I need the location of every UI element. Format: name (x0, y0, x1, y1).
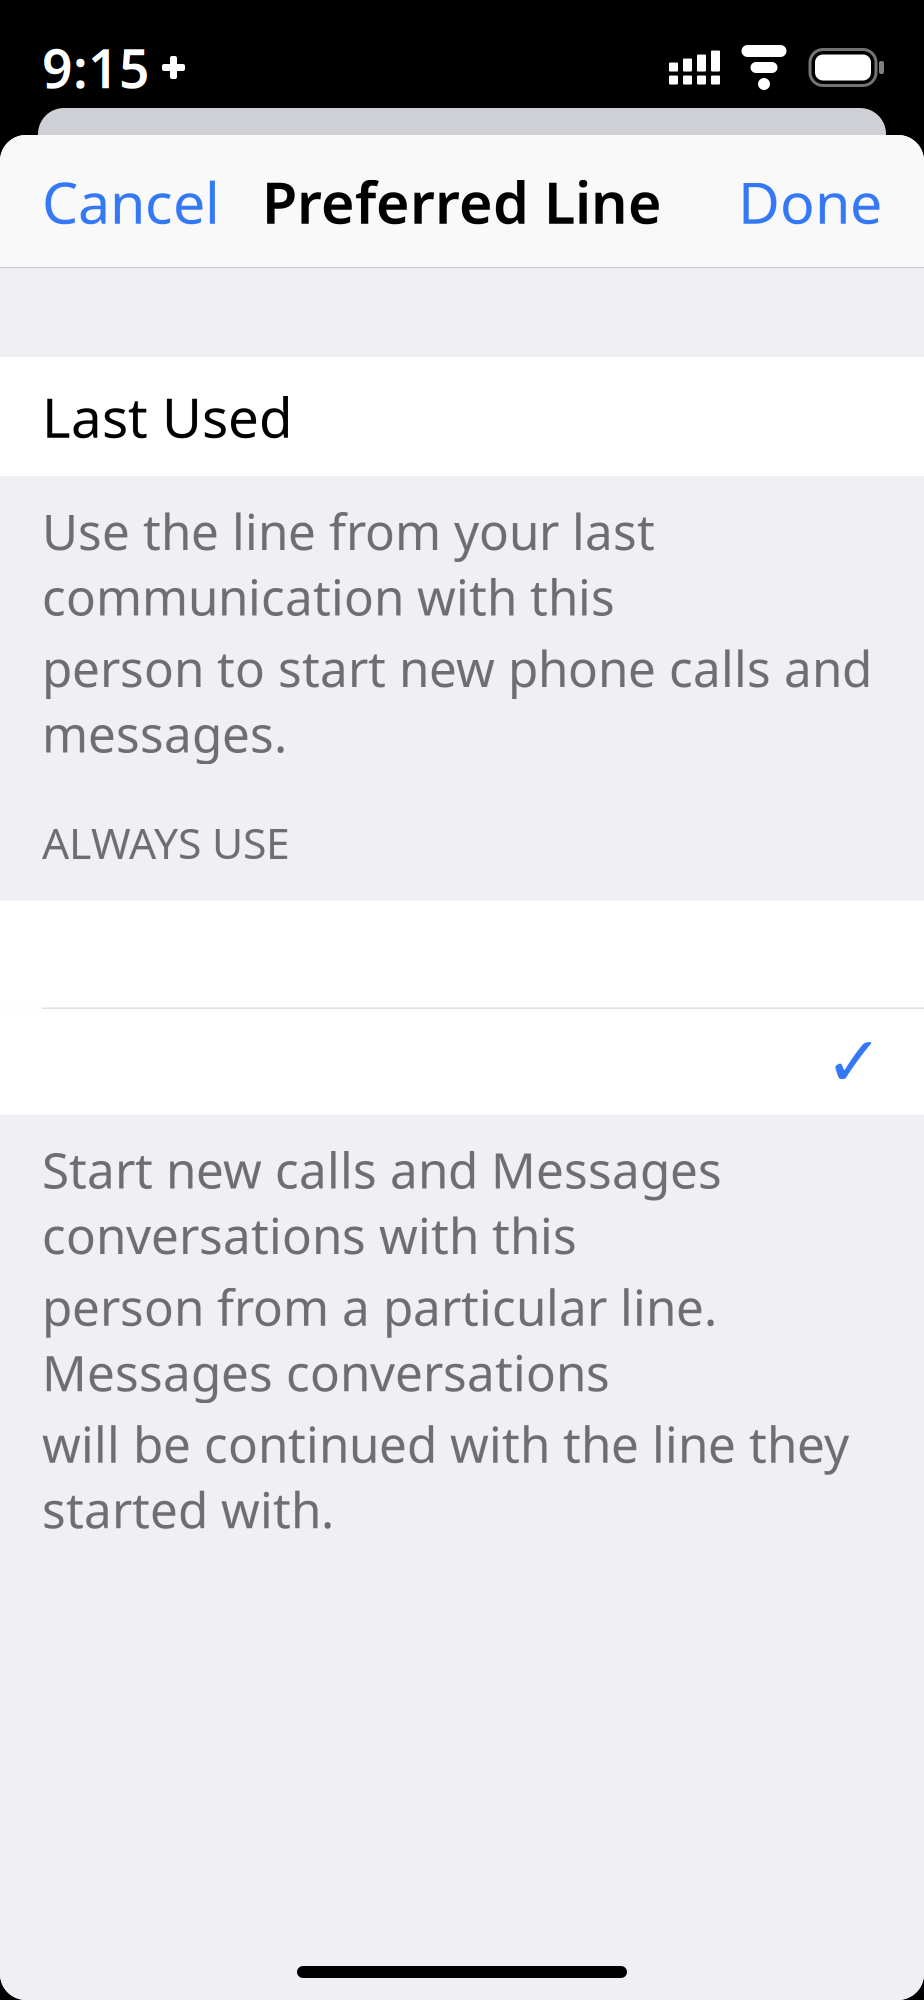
staticText: Done (738, 163, 882, 239)
button[interactable]: Last Used (0, 357, 924, 476)
staticText: Cancel (42, 163, 220, 239)
staticText: ALWAYS USE (42, 814, 290, 871)
staticText: ✓ (825, 1022, 883, 1101)
staticText: Preferred Line (262, 163, 662, 239)
staticText: person from a particular line. Messages … (42, 1274, 717, 1405)
staticText: Start new calls and Messages conversatio… (42, 1137, 722, 1268)
staticText: Use the line from your last communicatio… (42, 498, 655, 629)
staticText: person to start new phone calls and mess… (42, 635, 872, 766)
staticText: 9:15 (42, 32, 150, 103)
button[interactable]: Selected line (0, 1009, 924, 1115)
button[interactable]: Done (718, 141, 902, 261)
staticText: Last Used (42, 380, 293, 453)
staticText: will be continued with the line they sta… (42, 1411, 849, 1542)
button[interactable]: Cancel (22, 141, 240, 261)
